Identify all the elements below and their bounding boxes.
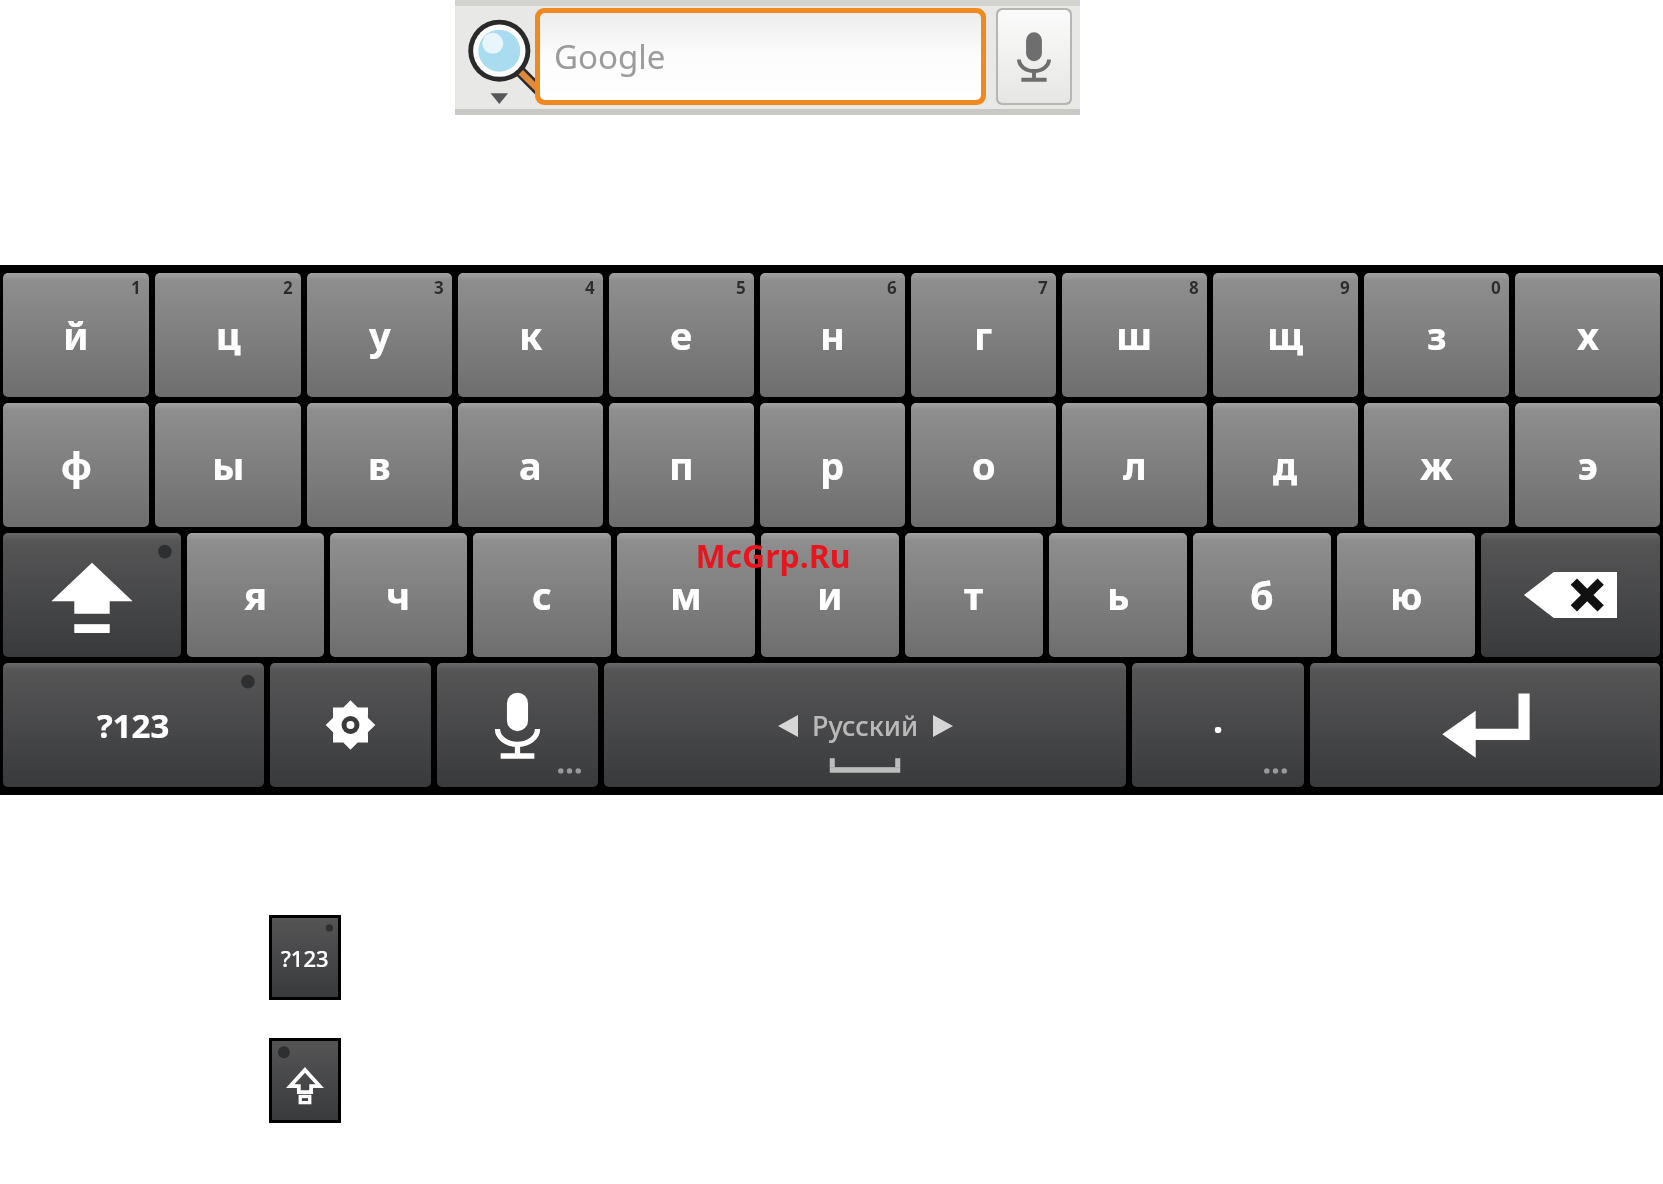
staticText: х [1577,309,1599,361]
staticText: с [532,569,552,621]
staticText: 0 [1491,276,1501,299]
button[interactable]: а [458,403,603,527]
staticText: я [244,569,267,621]
staticText: 3 [434,276,444,299]
staticText: ж [1420,439,1453,491]
button[interactable]: с [473,533,611,657]
button[interactable]: н [760,273,905,397]
staticText: ?123 [97,703,170,748]
staticText: ц [216,309,241,361]
button[interactable]: ?123 [3,663,264,787]
staticText: н [820,309,845,361]
staticText: ?123 [281,943,329,973]
button[interactable]: Period [1132,663,1304,787]
staticText: г [974,309,993,361]
staticText: ш [1116,309,1153,361]
staticText: и [817,569,843,621]
staticText: к [519,309,543,361]
button[interactable]: у [307,273,452,397]
button[interactable]: з [1364,273,1509,397]
button[interactable]: г [911,273,1056,397]
staticText: ь [1107,569,1130,621]
button[interactable]: Backspace [1481,533,1660,657]
button[interactable]: к [458,273,603,397]
button[interactable]: Voice search [998,10,1070,103]
button[interactable]: э [1515,403,1660,527]
staticText: л [1123,439,1147,491]
staticText: й [63,309,89,361]
button[interactable]: ф [3,403,149,527]
button[interactable]: ы [155,403,301,527]
staticText: щ [1267,309,1304,361]
staticText: о [972,439,996,491]
button[interactable]: ш [1062,273,1207,397]
staticText: е [670,309,693,361]
button[interactable]: ж [1364,403,1509,527]
staticText: McGrp.Ru [695,534,851,578]
staticText: ч [386,569,411,621]
button[interactable]: ю [1337,533,1475,657]
staticText: 1 [131,276,141,299]
button[interactable]: м [617,533,755,657]
button[interactable]: в [307,403,452,527]
button[interactable]: я [187,533,324,657]
staticText: р [820,439,845,491]
button[interactable]: е [609,273,754,397]
staticText: 7 [1038,276,1048,299]
button[interactable]: ч [330,533,467,657]
button[interactable]: Google [540,13,981,100]
button[interactable]: л [1062,403,1207,527]
button[interactable]: ь [1049,533,1187,657]
button[interactable]: Space [604,663,1126,787]
staticText: 8 [1189,276,1199,299]
staticText: Русский [812,707,919,744]
button[interactable]: б [1193,533,1331,657]
button[interactable]: т [905,533,1043,657]
button[interactable]: п [609,403,754,527]
staticText: з [1427,309,1447,361]
button[interactable]: Input settings [270,663,431,787]
staticText: ю [1390,569,1423,621]
button[interactable]: ц [155,273,301,397]
staticText: т [964,569,984,621]
button[interactable]: Voice input [437,663,598,787]
staticText: 4 [585,276,595,299]
button[interactable]: Shift [272,1041,338,1120]
staticText: 6 [887,276,897,299]
button[interactable]: о [911,403,1056,527]
staticText: 2 [283,276,293,299]
button[interactable]: Enter [1310,663,1660,787]
staticText: в [368,439,391,491]
button[interactable]: х [1515,273,1660,397]
button[interactable]: й [3,273,149,397]
button[interactable]: Shift [3,533,181,657]
staticText: 9 [1340,276,1350,299]
staticText: Google [554,34,666,79]
staticText: а [519,439,542,491]
staticText: д [1273,439,1298,491]
staticText: э [1578,439,1598,491]
button[interactable]: ?123 [272,918,338,997]
button[interactable]: р [760,403,905,527]
button[interactable]: щ [1213,273,1358,397]
staticText: . [1213,695,1224,744]
staticText: 5 [736,276,746,299]
staticText: ы [212,439,245,491]
staticText: м [670,569,702,621]
button[interactable]: и [761,533,899,657]
button[interactable]: д [1213,403,1358,527]
staticText: п [669,439,694,491]
staticText: б [1250,569,1274,621]
button[interactable]: Search provider [465,8,531,105]
staticText: у [369,309,391,361]
staticText: ф [61,439,92,491]
